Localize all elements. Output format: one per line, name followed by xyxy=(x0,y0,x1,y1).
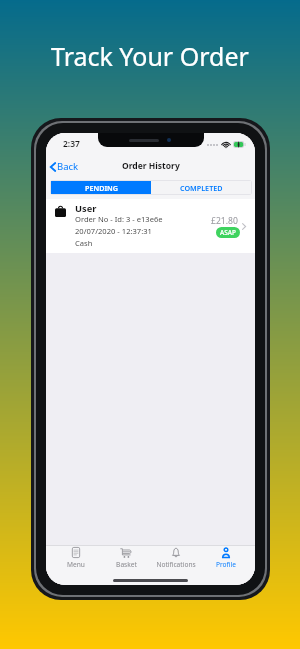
button[interactable]: Back xyxy=(46,157,85,176)
staticText: COMPLETED xyxy=(180,183,223,193)
staticText: PENDING xyxy=(85,183,118,193)
button[interactable]: User xyxy=(46,199,255,253)
button[interactable]: Basket xyxy=(101,546,151,568)
staticText: 20/07/2020 - 12:37:31 xyxy=(75,226,152,236)
staticText: Basket xyxy=(116,560,137,568)
staticText: Track Your Order xyxy=(51,39,249,73)
staticText: Back xyxy=(57,160,79,173)
button[interactable]: Profile xyxy=(201,546,251,568)
staticText: 2:37 xyxy=(63,138,80,150)
staticText: Profile xyxy=(216,560,236,568)
staticText: User xyxy=(75,202,97,215)
staticText: £21.80 xyxy=(211,215,238,227)
button[interactable]: Menu xyxy=(50,546,101,568)
button[interactable]: PENDING xyxy=(51,181,151,194)
staticText: Order History xyxy=(122,160,180,172)
staticText: Order No - Id: 3 - e13e6e xyxy=(75,214,163,224)
staticText: Menu xyxy=(67,560,85,568)
staticText: ASAP xyxy=(220,228,236,237)
button[interactable]: Notifications xyxy=(151,546,201,568)
staticText: Notifications xyxy=(156,560,196,568)
staticText: Cash xyxy=(75,238,93,248)
button[interactable]: COMPLETED xyxy=(151,181,251,194)
